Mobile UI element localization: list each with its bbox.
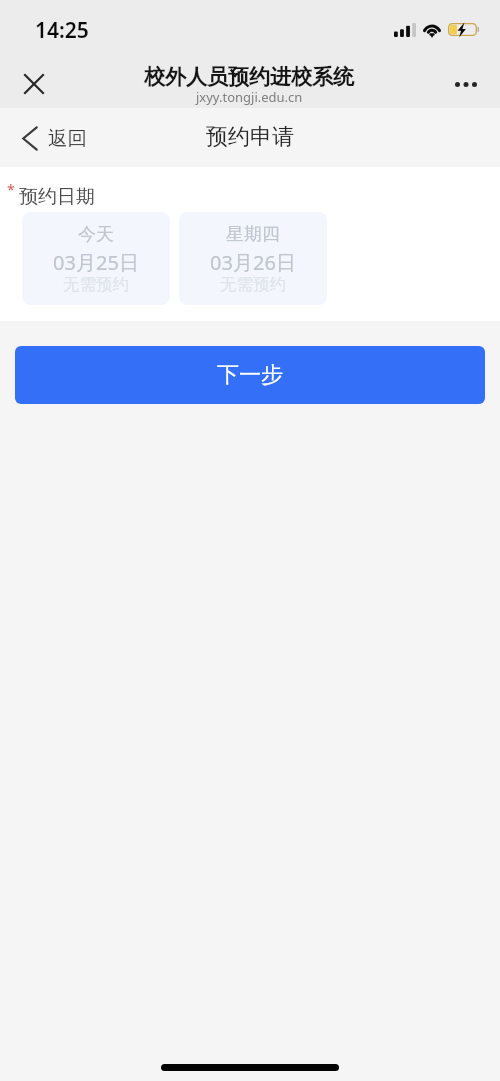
- staticText: *: [7, 180, 15, 199]
- staticText: 返回: [48, 126, 87, 151]
- staticText: jxyy.tongji.edu.cn: [196, 88, 303, 106]
- staticText: 校外人员预约进校系统: [144, 64, 354, 90]
- staticText: 14:25: [35, 16, 89, 45]
- button[interactable]: 今天: [22, 212, 170, 305]
- staticText: 预约申请: [206, 123, 294, 151]
- button[interactable]: Close: [12, 62, 56, 106]
- button[interactable]: 返回: [22, 114, 87, 162]
- button[interactable]: 星期四: [179, 212, 327, 305]
- staticText: 03月25日: [53, 249, 139, 276]
- staticText: 今天: [78, 223, 114, 246]
- staticText: 星期四: [226, 223, 280, 246]
- button[interactable]: More options: [444, 62, 488, 106]
- staticText: 下一步: [217, 361, 283, 389]
- staticText: 无需预约: [63, 274, 129, 295]
- button[interactable]: 下一步: [15, 346, 485, 404]
- staticText: 无需预约: [220, 274, 286, 295]
- staticText: 03月26日: [210, 249, 296, 276]
- staticText: 预约日期: [19, 185, 95, 209]
